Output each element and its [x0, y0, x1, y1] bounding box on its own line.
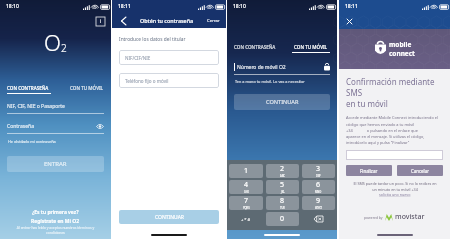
staticText: CON CONTRASEÑA [7, 85, 49, 91]
staticText: GHI [244, 190, 249, 194]
button[interactable]: 9 [302, 196, 335, 210]
button[interactable]: Cerrar [343, 13, 355, 29]
staticText: 7 [244, 196, 249, 206]
staticText: He olvidado mi contraseña [8, 139, 56, 144]
staticText: 5 [280, 180, 285, 190]
staticText: 18:11 [118, 3, 131, 10]
staticText: WXYZ [315, 206, 322, 210]
button[interactable] [346, 150, 443, 160]
staticText: Introduce los datos del titular [119, 36, 186, 43]
staticText: O [44, 27, 61, 57]
button[interactable]: Cerrar [207, 18, 220, 24]
staticText: 6 [316, 180, 321, 190]
button[interactable]: ENTRAR [7, 156, 104, 172]
button[interactable]: CON CONTRASEÑA [7, 85, 55, 94]
staticText: Número de móvil O2 [237, 64, 324, 71]
button[interactable]: CON TU MÓVIL [55, 85, 104, 91]
button[interactable]: Teléfono fijo o móvil [119, 73, 219, 88]
staticText: 1 [244, 166, 249, 176]
staticText: NIF/CIF/NIE [125, 55, 151, 61]
button[interactable]: 8 [266, 196, 299, 210]
staticText: MNO [315, 190, 322, 194]
button[interactable]: He olvidado mi contraseña [8, 139, 56, 144]
staticText: CON CONTRASEÑA [234, 44, 276, 50]
button[interactable]: CON CONTRASEÑA [234, 44, 282, 50]
button[interactable]: Contraseña [7, 123, 104, 134]
button[interactable]: CON TU MÓVIL [282, 44, 330, 53]
button[interactable]: NIF, CIF, NIE o Pasaporte [7, 103, 104, 114]
button[interactable]: 0 [266, 212, 299, 226]
button[interactable]: CONTINUAR [234, 94, 330, 110]
staticText: Teléfono fijo o móvil [125, 78, 169, 84]
button[interactable]: 3 [302, 164, 335, 178]
staticText: connect [389, 49, 415, 58]
staticText: Obtén tu contraseña [140, 17, 194, 24]
staticText: Finalizar [360, 168, 378, 174]
button[interactable]: NIF/CIF/NIE [119, 50, 219, 65]
staticText: CON TU MÓVIL [294, 44, 328, 50]
staticText: Cancelar [411, 168, 429, 174]
button[interactable]: solicita uno nuevo [379, 192, 411, 197]
staticText: powered by [364, 215, 383, 220]
staticText: 2 [61, 41, 67, 55]
button[interactable]: Finalizar [346, 165, 392, 176]
button[interactable]: 1 [229, 164, 263, 178]
staticText: Cerrar [207, 18, 220, 24]
staticText: 18:11 [345, 3, 358, 10]
staticText: Confirmación mediante SMS en tu móvil [346, 76, 443, 109]
staticText: 18:10 [6, 3, 19, 10]
staticText: 0 [280, 214, 285, 224]
staticText: solicita uno nuevo [379, 192, 411, 197]
staticText: NIF, CIF, NIE o Pasaporte [7, 103, 104, 110]
button[interactable]: Símbolos [229, 212, 263, 226]
button[interactable]: 4 [229, 180, 263, 194]
button[interactable]: Información [96, 17, 105, 26]
staticText: CON TU MÓVIL [70, 85, 104, 91]
staticText: mobile [389, 40, 412, 49]
button[interactable]: 7 [229, 196, 263, 210]
button[interactable]: CONTINUAR [119, 210, 219, 224]
button[interactable]: Atrás [118, 16, 128, 26]
staticText: JKL [281, 190, 285, 194]
staticText: ENTRAR [44, 160, 67, 168]
button[interactable]: Número de móvil O2 [234, 63, 330, 75]
staticText: 8 [280, 196, 285, 206]
button[interactable]: Borrar [302, 212, 335, 226]
button[interactable]: 5 [266, 180, 299, 194]
staticText: 18:10 [233, 3, 246, 10]
staticText: + * # [241, 217, 251, 222]
staticText: PQRS [243, 206, 250, 210]
staticText: DEF [316, 174, 321, 178]
staticText: El SMS puede tardar un poco. Si no lo re… [353, 181, 437, 192]
button[interactable]: 2 [266, 164, 299, 178]
button[interactable]: Cancelar [397, 165, 443, 176]
staticText: Al entrar has leído y aceptas nuestros t… [14, 225, 97, 235]
staticText: ABC [280, 174, 285, 178]
staticText: Contraseña [7, 123, 96, 130]
staticText: CONTINUAR [266, 98, 299, 106]
staticText: 4 [244, 180, 249, 190]
staticText: 9 [316, 196, 321, 206]
button[interactable]: ¿Es tu primera vez? [0, 209, 111, 225]
staticText: movistar [395, 212, 425, 222]
staticText: Regístrate en Mi O2 [31, 218, 80, 225]
staticText: CONTINUAR [155, 214, 184, 221]
staticText: Accede mediante Mobile Connect introduci… [346, 115, 438, 145]
staticText: TUV [280, 206, 285, 210]
staticText: ¿Es tu primera vez? [32, 209, 79, 216]
staticText: i [100, 18, 102, 25]
staticText: 3 [316, 164, 321, 174]
staticText: Ten a mano tu móvil. Lo vas a necesitar [235, 79, 305, 84]
staticText: 2 [280, 164, 285, 174]
button[interactable]: 6 [302, 180, 335, 194]
